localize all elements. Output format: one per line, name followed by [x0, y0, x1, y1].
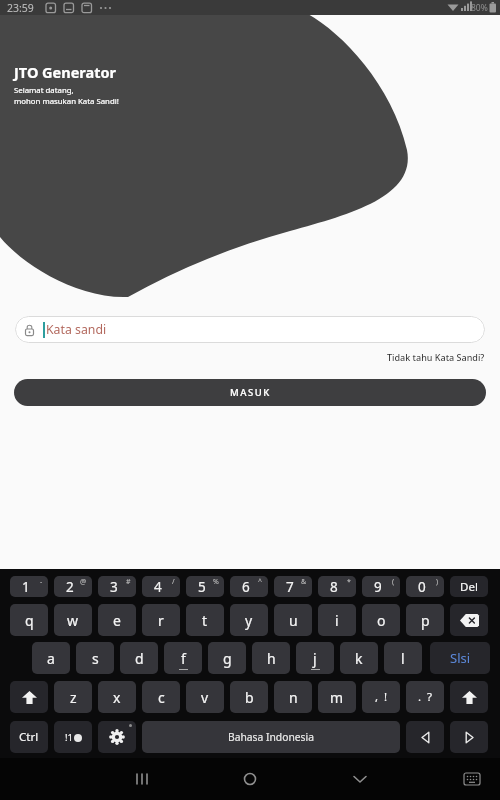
- button[interactable]: d: [120, 642, 158, 674]
- button[interactable]: s: [76, 642, 114, 674]
- button[interactable]: MASUK: [14, 379, 486, 406]
- button[interactable]: Kata sandi: [15, 316, 485, 343]
- staticText: 0: [418, 578, 426, 596]
- button[interactable]: t: [186, 604, 224, 636]
- button[interactable]: [406, 721, 444, 753]
- button[interactable]: Slsi: [430, 642, 490, 674]
- button[interactable]: v: [186, 681, 224, 713]
- staticText: q: [25, 611, 34, 630]
- staticText: g: [223, 649, 232, 668]
- button[interactable]: u: [274, 604, 312, 636]
- button[interactable]: Ctrl: [10, 721, 48, 753]
- button[interactable]: p: [406, 604, 444, 636]
- button[interactable]: 6: [230, 576, 268, 597]
- staticText: 9: [374, 578, 382, 596]
- button[interactable]: 4: [142, 576, 180, 597]
- staticText: &: [301, 577, 307, 587]
- button[interactable]: . ?: [406, 681, 444, 713]
- staticText: 8: [330, 578, 338, 596]
- button[interactable]: 8: [318, 576, 356, 597]
- button[interactable]: [450, 763, 490, 795]
- button[interactable]: e: [98, 604, 136, 636]
- button[interactable]: Del: [450, 576, 488, 597]
- button[interactable]: q: [10, 604, 48, 636]
- button[interactable]: z: [54, 681, 92, 713]
- button[interactable]: [450, 604, 488, 636]
- button[interactable]: l: [384, 642, 422, 674]
- button[interactable]: h: [252, 642, 290, 674]
- button[interactable]: n: [274, 681, 312, 713]
- staticText: Selamat datang,: [14, 85, 74, 96]
- button[interactable]: [10, 681, 48, 713]
- staticText: y: [245, 611, 253, 630]
- button[interactable]: j: [296, 642, 334, 674]
- staticText: z: [70, 688, 77, 707]
- button[interactable]: 0: [406, 576, 444, 597]
- button[interactable]: [98, 721, 136, 753]
- button[interactable]: w: [54, 604, 92, 636]
- staticText: 1: [22, 578, 30, 596]
- staticText: *: [347, 577, 351, 587]
- button[interactable]: c: [142, 681, 180, 713]
- button[interactable]: 9: [362, 576, 400, 597]
- staticText: s: [92, 649, 99, 668]
- button[interactable]: g: [208, 642, 246, 674]
- staticText: %: [213, 577, 219, 587]
- staticText: #: [126, 577, 131, 587]
- staticText: d: [135, 649, 144, 668]
- staticText: 23:59: [7, 1, 34, 15]
- staticText: c: [158, 688, 165, 707]
- staticText: 5: [198, 578, 206, 596]
- button[interactable]: Tidak tahu Kata Sandi?: [387, 351, 485, 363]
- button[interactable]: [120, 763, 180, 795]
- staticText: n: [289, 688, 298, 707]
- staticText: JTO Generator: [14, 62, 117, 82]
- button[interactable]: [450, 681, 488, 713]
- button[interactable]: b: [230, 681, 268, 713]
- button[interactable]: y: [230, 604, 268, 636]
- button[interactable]: r: [142, 604, 180, 636]
- button[interactable]: 2: [54, 576, 92, 597]
- staticText: h: [267, 649, 276, 668]
- button[interactable]: 5: [186, 576, 224, 597]
- button[interactable]: k: [340, 642, 378, 674]
- button[interactable]: [220, 763, 280, 795]
- staticText: 6: [242, 578, 250, 596]
- staticText: MASUK: [230, 386, 271, 399]
- staticText: Slsi: [450, 649, 471, 667]
- button[interactable]: a: [32, 642, 70, 674]
- button[interactable]: !1: [54, 721, 92, 753]
- button[interactable]: f: [164, 642, 202, 674]
- staticText: 7: [286, 578, 294, 596]
- staticText: Kata sandi: [46, 321, 107, 338]
- staticText: , !: [375, 689, 388, 705]
- staticText: t: [202, 611, 208, 630]
- staticText: k: [355, 649, 363, 668]
- button[interactable]: x: [98, 681, 136, 713]
- staticText: i: [335, 611, 339, 630]
- staticText: 3: [110, 578, 118, 596]
- staticText: 2: [66, 578, 74, 596]
- staticText: o: [377, 611, 386, 630]
- staticText: -: [40, 577, 43, 587]
- button[interactable]: i: [318, 604, 356, 636]
- button[interactable]: 3: [98, 576, 136, 597]
- staticText: r: [158, 611, 164, 630]
- staticText: Ctrl: [19, 729, 39, 745]
- staticText: ^: [258, 577, 263, 587]
- staticText: Bahasa Indonesia: [228, 730, 314, 744]
- staticText: p: [421, 611, 430, 630]
- staticText: f: [181, 649, 186, 668]
- button[interactable]: Bahasa Indonesia: [142, 721, 400, 753]
- button[interactable]: , !: [362, 681, 400, 713]
- button[interactable]: 7: [274, 576, 312, 597]
- button[interactable]: [330, 763, 390, 795]
- button[interactable]: m: [318, 681, 356, 713]
- staticText: 4: [154, 578, 162, 596]
- button[interactable]: [450, 721, 488, 753]
- button[interactable]: o: [362, 604, 400, 636]
- staticText: mohon masukan Kata Sandi!: [14, 96, 119, 107]
- button[interactable]: 1: [10, 576, 48, 597]
- staticText: . ?: [418, 689, 433, 705]
- staticText: u: [289, 611, 298, 630]
